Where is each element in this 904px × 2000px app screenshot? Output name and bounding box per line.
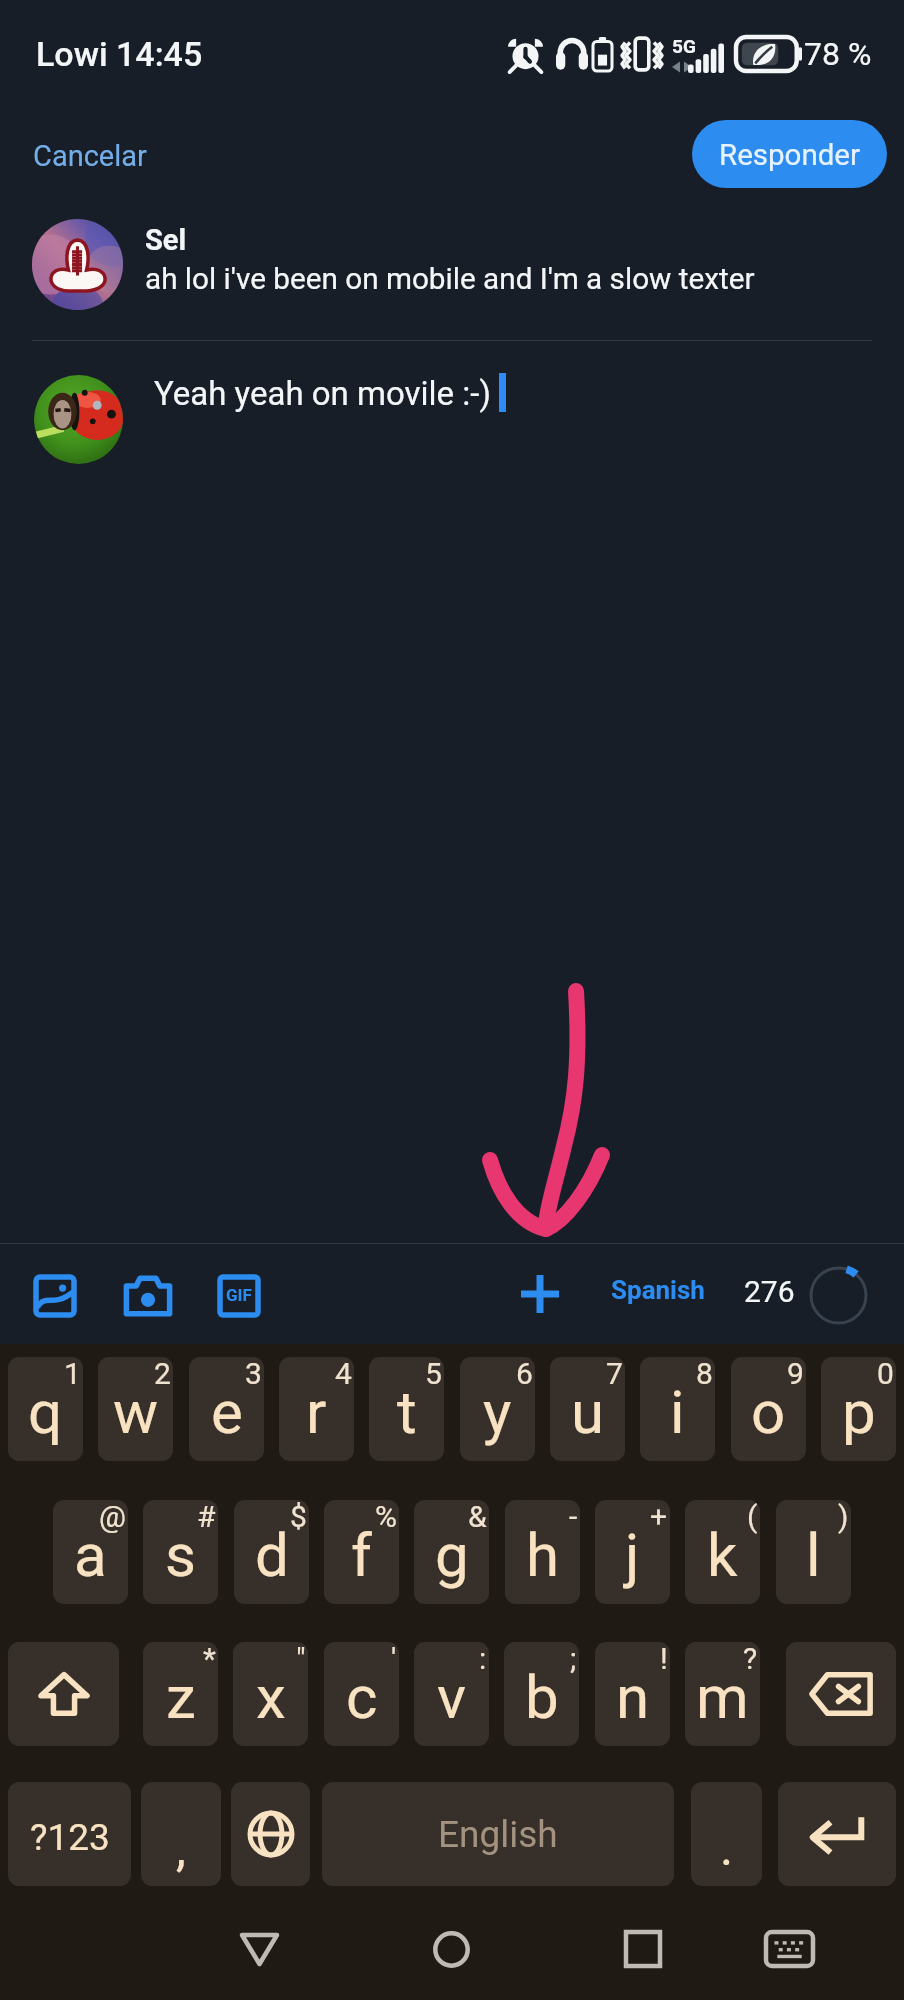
button[interactable]: English: [322, 1782, 674, 1886]
button[interactable]: *: [143, 1642, 218, 1746]
staticText: .: [720, 1819, 734, 1878]
staticText: a: [74, 1520, 107, 1590]
staticText: ,: [176, 1819, 186, 1878]
button[interactable]: Insert image: [19, 1260, 91, 1332]
button[interactable]: Hide keyboard: [744, 1904, 834, 1994]
staticText: o: [751, 1377, 786, 1447]
staticText: ;: [570, 1642, 577, 1676]
button[interactable]: (: [685, 1500, 760, 1604]
staticText: ?123: [30, 1816, 110, 1859]
button[interactable]: ": [233, 1642, 308, 1746]
staticText: g: [435, 1520, 469, 1590]
staticText: e: [211, 1377, 243, 1447]
button[interactable]: ?: [685, 1642, 760, 1746]
staticText: ?: [743, 1642, 758, 1676]
button[interactable]: 1: [8, 1357, 83, 1461]
staticText: j: [625, 1520, 640, 1590]
button[interactable]: Home: [406, 1904, 496, 1994]
staticText: i: [670, 1377, 685, 1447]
button[interactable]: 3: [189, 1357, 264, 1461]
button[interactable]: 5: [369, 1357, 444, 1461]
staticText: k: [707, 1520, 738, 1590]
staticText: 6: [516, 1357, 533, 1391]
staticText: t: [397, 1377, 417, 1447]
staticText: 0: [877, 1357, 894, 1391]
button[interactable]: ,: [141, 1782, 221, 1886]
staticText: y: [483, 1377, 512, 1447]
staticText: m: [696, 1662, 749, 1732]
staticText: 4: [335, 1357, 352, 1391]
staticText: 3: [245, 1357, 262, 1391]
button[interactable]: +: [595, 1500, 670, 1604]
staticText: d: [255, 1520, 289, 1590]
staticText: $: [290, 1500, 307, 1534]
button[interactable]: Backspace: [786, 1642, 896, 1746]
staticText: Cancelar: [33, 139, 147, 173]
button[interactable]: .: [691, 1782, 762, 1886]
staticText: ): [838, 1500, 849, 1534]
button[interactable]: 9: [731, 1357, 806, 1461]
staticText: ": [296, 1642, 306, 1676]
button[interactable]: Cancelar: [18, 131, 162, 181]
staticText: 5: [425, 1357, 442, 1391]
staticText: l: [806, 1520, 821, 1590]
button[interactable]: ;: [504, 1642, 579, 1746]
button[interactable]: @: [53, 1500, 128, 1604]
staticText: Yeah yeah on movile :-): [154, 374, 491, 413]
staticText: (: [747, 1500, 758, 1534]
button[interactable]: ): [776, 1500, 851, 1604]
staticText: GIF: [226, 1285, 252, 1305]
button[interactable]: 7: [550, 1357, 625, 1461]
staticText: 7: [606, 1357, 623, 1391]
staticText: v: [437, 1662, 467, 1732]
staticText: h: [526, 1520, 560, 1590]
button[interactable]: Recents: [598, 1904, 688, 1994]
button[interactable]: Enter: [778, 1782, 896, 1886]
button[interactable]: !: [595, 1642, 670, 1746]
staticText: 276: [744, 1274, 795, 1309]
staticText: u: [571, 1377, 605, 1447]
button[interactable]: GIF: [203, 1260, 275, 1332]
staticText: *: [203, 1642, 216, 1676]
button[interactable]: $: [234, 1500, 309, 1604]
staticText: !: [660, 1642, 668, 1676]
staticText: English: [438, 1813, 558, 1856]
button[interactable]: 8: [640, 1357, 715, 1461]
button[interactable]: #: [143, 1500, 218, 1604]
button[interactable]: &: [414, 1500, 489, 1604]
staticText: 2: [154, 1357, 171, 1391]
button[interactable]: 6: [460, 1357, 535, 1461]
staticText: 5G: [672, 35, 696, 57]
staticText: f: [351, 1520, 372, 1590]
staticText: c: [346, 1662, 378, 1732]
button[interactable]: 2: [98, 1357, 173, 1461]
button[interactable]: %: [324, 1500, 399, 1604]
button[interactable]: Shift: [8, 1642, 119, 1746]
staticText: ah lol i've been on mobile and I'm a slo…: [145, 261, 755, 296]
button[interactable]: ?123: [8, 1782, 131, 1886]
staticText: s: [165, 1520, 196, 1590]
staticText: r: [306, 1377, 327, 1447]
staticText: q: [28, 1377, 63, 1447]
button[interactable]: Back: [214, 1904, 304, 1994]
button[interactable]: :: [414, 1642, 489, 1746]
button[interactable]: 0: [821, 1357, 896, 1461]
staticText: b: [525, 1662, 559, 1732]
button[interactable]: Responder: [692, 120, 887, 188]
staticText: w: [113, 1377, 159, 1447]
button[interactable]: -: [505, 1500, 580, 1604]
button[interactable]: Change language: [231, 1782, 310, 1886]
staticText: 78 %: [804, 35, 872, 73]
staticText: n: [616, 1662, 650, 1732]
staticText: Lowi 14:45: [36, 34, 203, 74]
staticText: Spanish: [611, 1275, 705, 1305]
button[interactable]: ': [324, 1642, 399, 1746]
staticText: :: [479, 1642, 487, 1676]
staticText: 8: [696, 1357, 713, 1391]
button[interactable]: Spanish: [600, 1261, 716, 1319]
button[interactable]: 4: [279, 1357, 354, 1461]
button[interactable]: Camera: [112, 1260, 184, 1332]
staticText: -: [569, 1500, 578, 1534]
staticText: p: [842, 1377, 876, 1447]
button[interactable]: Add attachment: [504, 1258, 576, 1330]
